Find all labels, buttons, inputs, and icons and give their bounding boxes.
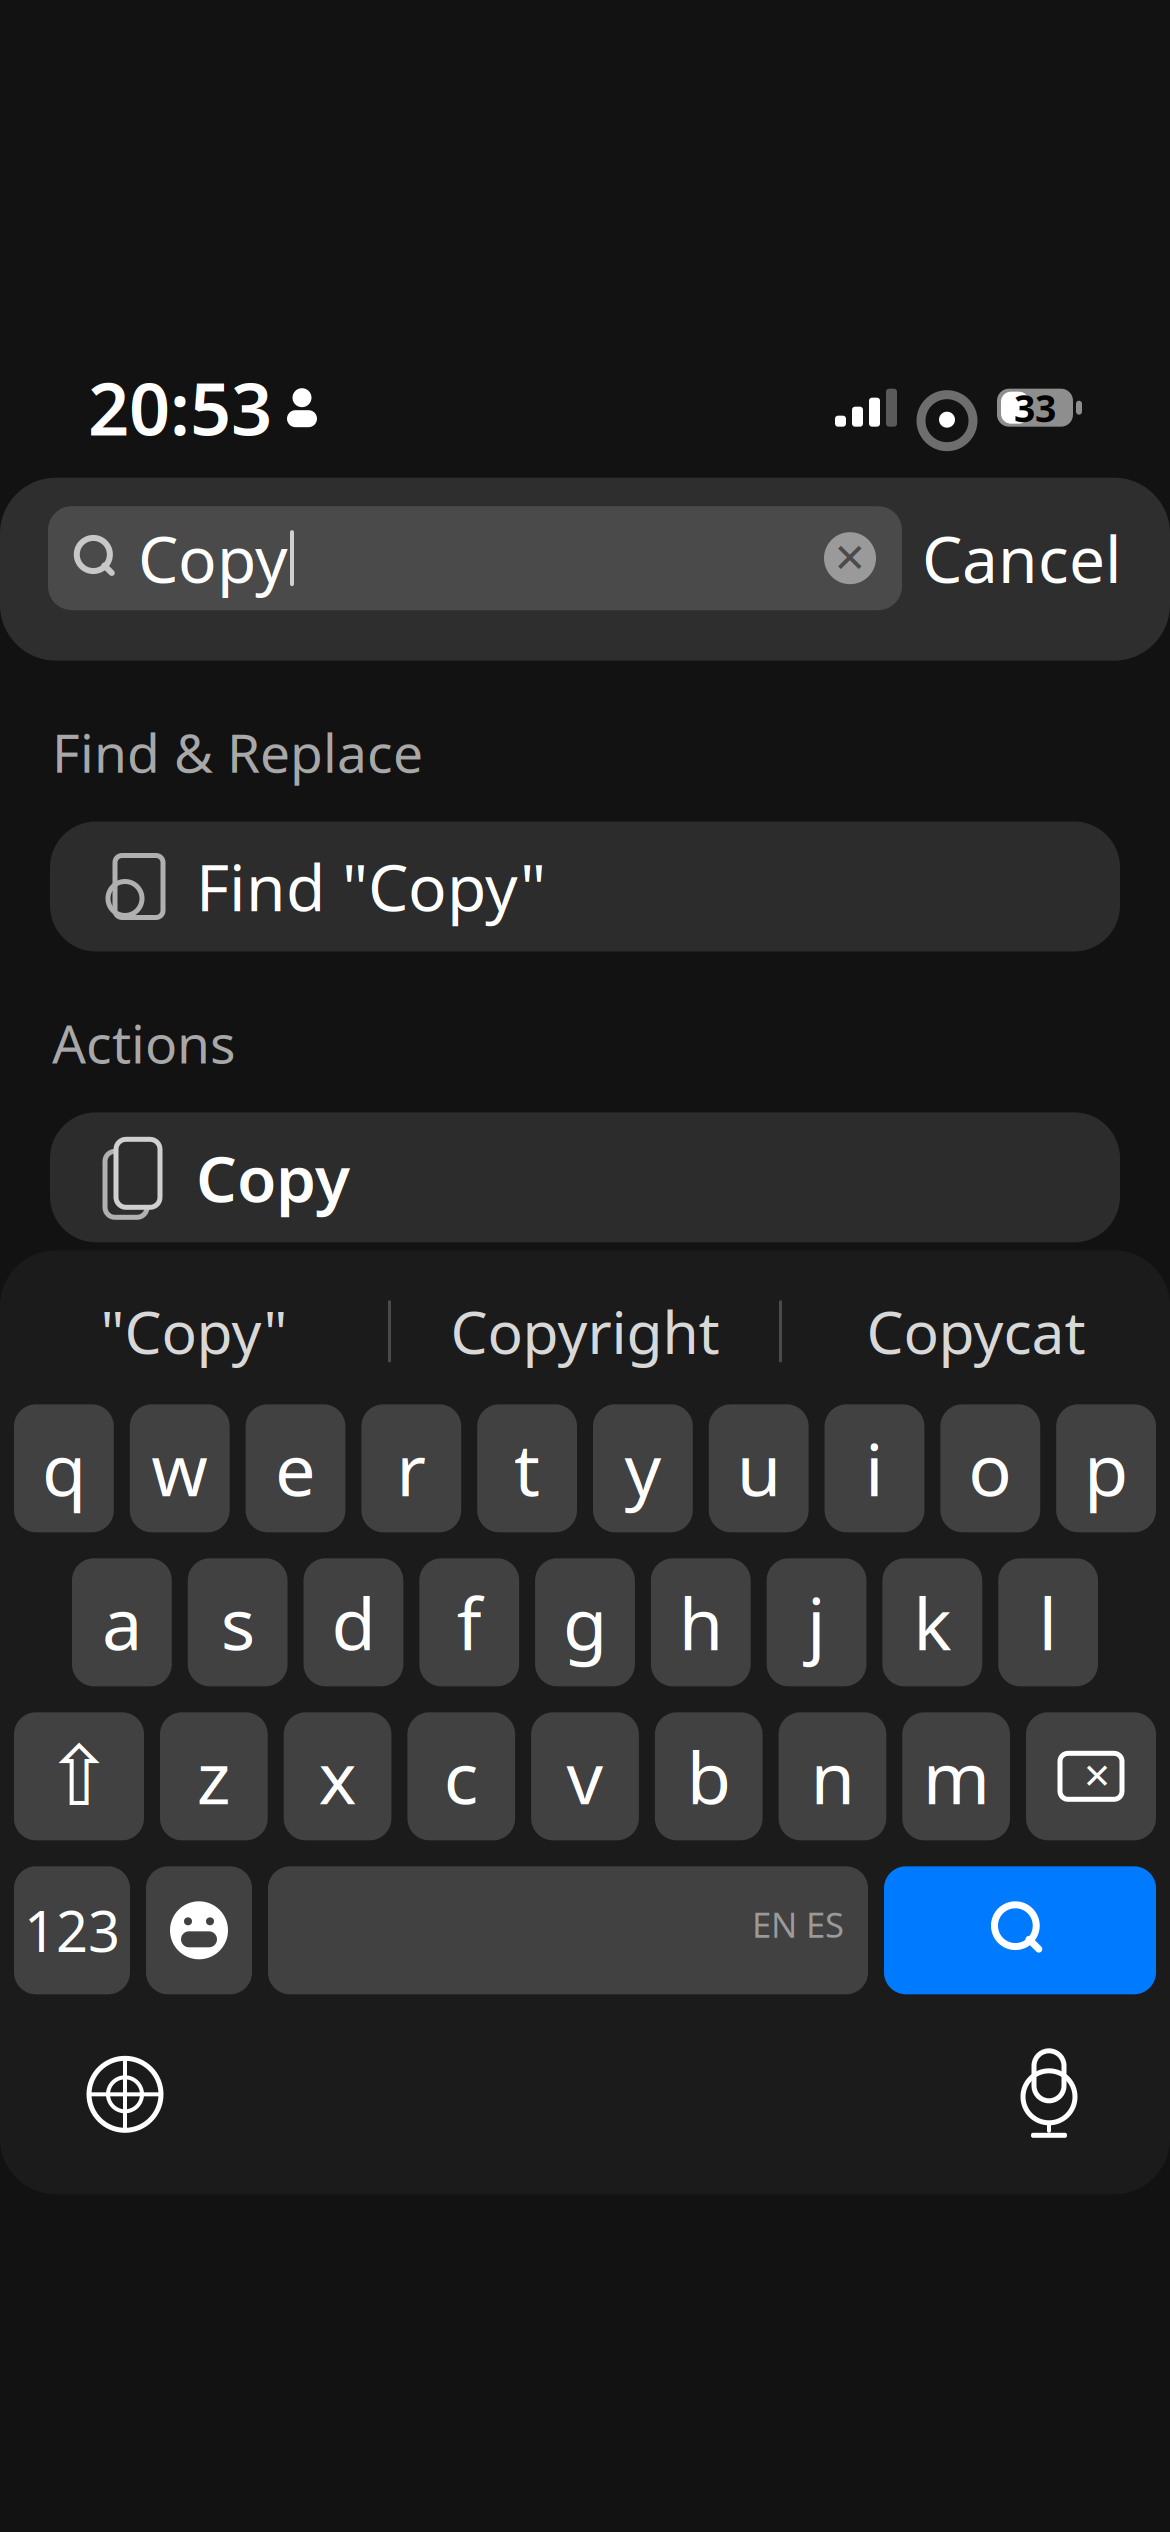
button[interactable]: h <box>651 1558 751 1686</box>
staticText: r <box>396 1420 426 1516</box>
button[interactable]: q <box>14 1404 114 1532</box>
staticText: p <box>1084 1420 1128 1516</box>
button[interactable]: z <box>160 1712 268 1840</box>
staticText: s <box>221 1574 255 1670</box>
button[interactable]: s <box>188 1558 288 1686</box>
button[interactable]: l <box>998 1558 1098 1686</box>
staticText: w <box>151 1420 208 1516</box>
staticText: "Copy" <box>100 1292 287 1370</box>
button[interactable]: Shift <box>14 1712 144 1840</box>
staticText: z <box>197 1728 231 1824</box>
button[interactable]: Copy <box>50 1112 1120 1242</box>
button[interactable]: Copy <box>48 506 902 610</box>
button[interactable]: r <box>361 1404 461 1532</box>
button[interactable]: i <box>825 1404 924 1532</box>
staticText: d <box>331 1574 375 1670</box>
staticText: c <box>444 1728 479 1824</box>
staticText: n <box>810 1728 854 1824</box>
staticText: Actions <box>52 1007 236 1078</box>
staticText: Find "Copy" <box>196 844 546 929</box>
staticText: Copyright <box>450 1292 719 1370</box>
button[interactable]: d <box>304 1558 403 1686</box>
staticText: q <box>42 1420 86 1516</box>
button[interactable]: k <box>882 1558 982 1686</box>
staticText: 20:53 <box>88 360 272 455</box>
button[interactable]: Emoji <box>146 1866 252 1994</box>
staticText: ✕ <box>833 535 867 581</box>
button[interactable]: u <box>709 1404 809 1532</box>
button[interactable]: j <box>767 1558 866 1686</box>
staticText: b <box>687 1728 731 1824</box>
staticText: v <box>566 1728 603 1824</box>
button[interactable]: Copyright <box>391 1281 779 1381</box>
button[interactable]: Search <box>884 1866 1156 1994</box>
staticText: u <box>737 1420 781 1516</box>
button[interactable]: Space <box>268 1866 868 1994</box>
button[interactable]: Delete <box>1026 1712 1156 1840</box>
staticText: x <box>319 1728 357 1824</box>
staticText: 33 <box>1014 383 1056 432</box>
staticText: ⇧ <box>44 1729 113 1823</box>
staticText: m <box>923 1728 990 1824</box>
button[interactable]: x <box>284 1712 391 1840</box>
button[interactable]: Change keyboard <box>66 2035 184 2153</box>
staticText: a <box>102 1574 142 1670</box>
staticText: e <box>275 1420 316 1516</box>
staticText: h <box>679 1574 723 1670</box>
button[interactable]: p <box>1056 1404 1156 1532</box>
staticText: Copy <box>196 1135 350 1220</box>
button[interactable]: Dictation <box>994 2026 1104 2162</box>
staticText: k <box>913 1574 951 1670</box>
staticText: Copycat <box>866 1292 1085 1370</box>
staticText: Copy <box>138 516 288 601</box>
button[interactable]: Copycat <box>782 1281 1170 1381</box>
staticText: g <box>563 1574 607 1670</box>
button[interactable]: e <box>246 1404 345 1532</box>
button[interactable]: y <box>593 1404 693 1532</box>
staticText: EN ES <box>752 1901 844 1947</box>
button[interactable]: 123 <box>14 1866 130 1994</box>
button[interactable]: Cancel <box>922 504 1122 613</box>
button[interactable]: m <box>902 1712 1010 1840</box>
button[interactable]: w <box>130 1404 230 1532</box>
button[interactable]: c <box>407 1712 515 1840</box>
staticText: i <box>865 1420 884 1516</box>
button[interactable]: v <box>531 1712 639 1840</box>
staticText: j <box>807 1574 826 1670</box>
button[interactable]: g <box>535 1558 635 1686</box>
button[interactable]: b <box>655 1712 763 1840</box>
button[interactable]: o <box>940 1404 1040 1532</box>
button[interactable]: t <box>477 1404 577 1532</box>
staticText: l <box>1039 1574 1058 1670</box>
staticText: 123 <box>24 1893 120 1967</box>
staticText: Cancel <box>922 516 1122 601</box>
button[interactable]: a <box>72 1558 172 1686</box>
staticText: ✕ <box>1082 1757 1111 1796</box>
button[interactable]: "Copy" <box>0 1281 388 1381</box>
staticText: y <box>624 1420 661 1516</box>
button[interactable]: f <box>419 1558 519 1686</box>
staticText: f <box>457 1574 482 1670</box>
staticText: o <box>968 1420 1012 1516</box>
staticText: Find & Replace <box>52 717 423 787</box>
button[interactable]: Find "Copy" <box>50 821 1120 951</box>
staticText: t <box>514 1420 540 1516</box>
button[interactable]: n <box>779 1712 886 1840</box>
